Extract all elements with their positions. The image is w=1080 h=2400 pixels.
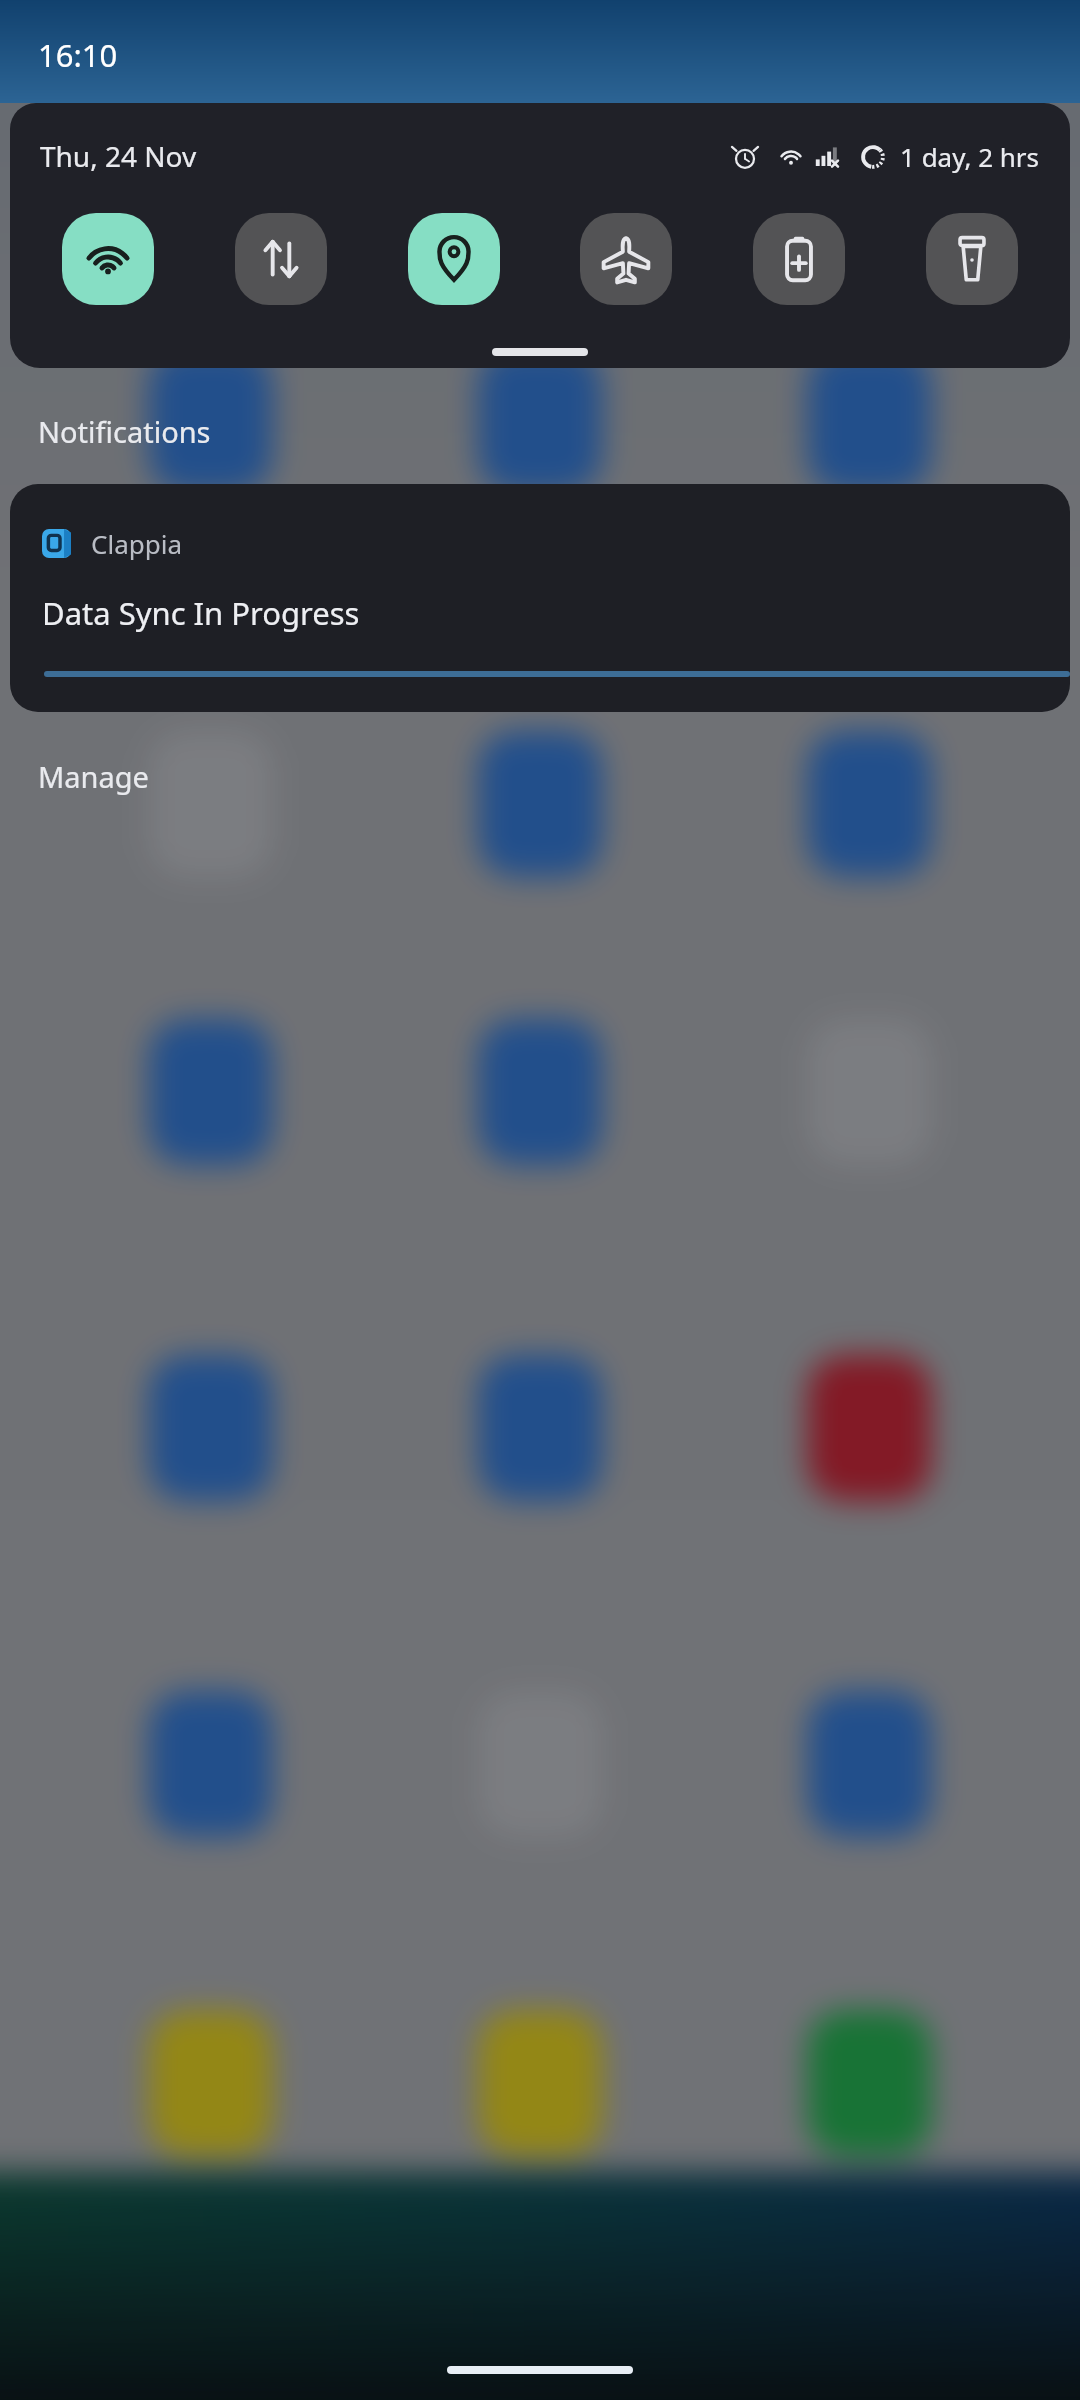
button[interactable]: Clappia: [10, 484, 1070, 712]
button[interactable]: Flashlight: [926, 213, 1018, 305]
staticText: Clappia: [91, 526, 183, 561]
button[interactable]: Thu, 24 Nov: [40, 137, 197, 175]
staticText: 16:10: [38, 34, 118, 76]
staticText: 1 day, 2 hrs: [900, 139, 1040, 174]
button[interactable]: Wi-Fi: [62, 213, 154, 305]
button[interactable]: [492, 348, 588, 356]
button[interactable]: Manage: [38, 757, 149, 796]
button[interactable]: Location: [408, 213, 500, 305]
button[interactable]: Battery saver: [753, 213, 845, 305]
staticText: Notifications: [38, 412, 211, 451]
staticText: Data Sync In Progress: [42, 592, 360, 634]
button[interactable]: Airplane mode: [580, 213, 672, 305]
button[interactable]: Mobile data: [235, 213, 327, 305]
